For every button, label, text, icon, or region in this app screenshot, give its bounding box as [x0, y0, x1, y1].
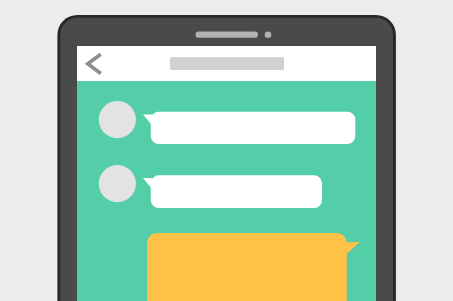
button[interactable]: Received message	[143, 175, 323, 209]
button[interactable]: Contact avatar	[99, 101, 138, 140]
button[interactable]: Contact avatar	[99, 165, 138, 204]
button[interactable]: Sent message	[147, 233, 361, 301]
button[interactable]: Back	[81, 46, 117, 81]
button[interactable]: Received message	[143, 112, 356, 145]
